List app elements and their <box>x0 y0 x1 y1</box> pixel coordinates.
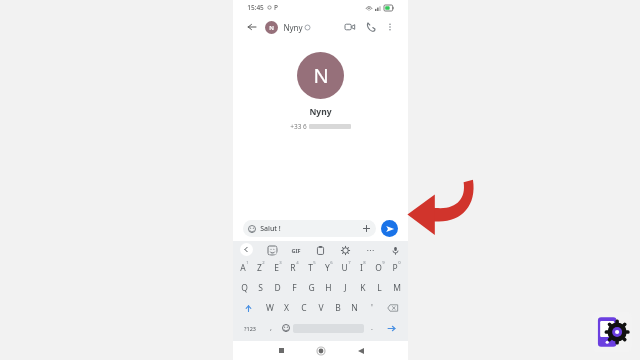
button[interactable]: F <box>286 278 303 298</box>
button[interactable]: Home <box>311 341 331 360</box>
button[interactable]: Stickers <box>266 244 278 256</box>
button[interactable]: GIF <box>291 244 301 256</box>
staticText: 2 <box>262 260 265 266</box>
staticText: ' <box>371 302 373 314</box>
staticText: 0 <box>398 260 401 266</box>
button[interactable]: Back <box>351 341 371 360</box>
staticText: GIF <box>291 247 301 254</box>
button[interactable]: Call <box>363 19 379 35</box>
button[interactable]: Backspace <box>380 298 405 318</box>
button[interactable]: Y <box>320 258 337 278</box>
staticText: E <box>274 262 279 274</box>
button[interactable]: , <box>263 318 278 338</box>
staticText: Salut ! <box>260 224 281 234</box>
staticText: K <box>360 282 366 294</box>
button[interactable]: Back <box>244 19 260 35</box>
button[interactable]: Back <box>240 243 253 256</box>
staticText: 9 <box>382 260 385 266</box>
button[interactable]: D <box>269 278 286 298</box>
button[interactable]: O <box>371 258 388 278</box>
button[interactable]: Recents <box>271 341 291 360</box>
button[interactable]: Voice input <box>389 244 401 256</box>
button[interactable]: W <box>261 298 278 318</box>
staticText: 1 <box>246 260 249 266</box>
button[interactable]: H <box>320 278 337 298</box>
staticText: 15:45 <box>247 3 264 12</box>
staticText: V <box>318 302 324 314</box>
button[interactable]: Settings <box>339 244 351 256</box>
staticText: Q <box>241 282 248 294</box>
button[interactable]: Send <box>381 220 398 237</box>
button[interactable]: Salut ! <box>243 220 376 237</box>
button[interactable]: More options <box>383 20 397 34</box>
staticText: M <box>393 282 401 294</box>
button[interactable]: J <box>337 278 354 298</box>
button[interactable]: T <box>303 258 320 278</box>
staticText: X <box>284 302 289 314</box>
button[interactable]: R <box>286 258 303 278</box>
button[interactable]: . <box>364 318 379 338</box>
staticText: J <box>344 282 347 294</box>
staticText: Z <box>257 262 262 274</box>
staticText: N <box>351 302 358 314</box>
staticText: T <box>308 262 313 274</box>
staticText: G <box>308 282 315 294</box>
staticText: ?123 <box>244 325 256 332</box>
staticText: 3 <box>279 260 282 266</box>
button[interactable]: S <box>252 278 269 298</box>
staticText: 7 <box>348 260 351 266</box>
staticText: P <box>274 3 278 12</box>
button[interactable]: I <box>354 258 371 278</box>
button[interactable]: Clipboard <box>314 244 326 256</box>
button[interactable]: Emoji <box>278 318 293 338</box>
staticText: B <box>335 302 341 314</box>
button[interactable]: G <box>303 278 320 298</box>
staticText: R <box>290 262 296 274</box>
button[interactable]: More <box>364 244 376 256</box>
button[interactable]: A <box>236 258 252 278</box>
staticText: N <box>269 24 274 32</box>
button[interactable]: ?123 <box>237 318 263 338</box>
button[interactable]: C <box>295 298 312 318</box>
button[interactable]: U <box>337 258 354 278</box>
staticText: S <box>258 282 263 294</box>
staticText: 4 <box>296 260 299 266</box>
staticText: N <box>313 62 329 89</box>
staticText: I <box>360 262 363 274</box>
staticText: +33 6 <box>290 122 307 131</box>
staticText: O <box>375 262 382 274</box>
staticText: 5 <box>313 260 316 266</box>
button[interactable]: E <box>269 258 286 278</box>
staticText: Y <box>325 262 330 274</box>
button[interactable]: Video call <box>342 19 358 35</box>
staticText: 8 <box>363 260 366 266</box>
staticText: . <box>371 323 373 333</box>
staticText: D <box>274 282 281 294</box>
staticText: Nyny <box>309 106 332 118</box>
staticText: A <box>240 262 246 274</box>
button[interactable]: Z <box>252 258 269 278</box>
button[interactable]: P <box>388 258 405 278</box>
button[interactable]: ' <box>363 298 380 318</box>
button[interactable]: N <box>297 52 344 99</box>
button[interactable]: Enter <box>379 318 404 338</box>
button[interactable]: K <box>354 278 371 298</box>
staticText: C <box>301 302 307 314</box>
staticText: L <box>377 282 382 294</box>
staticText: U <box>341 262 348 274</box>
button[interactable]: Shift <box>236 298 261 318</box>
button[interactable]: N <box>346 298 363 318</box>
staticText: F <box>292 282 297 294</box>
button[interactable]: B <box>329 298 346 318</box>
staticText: W <box>266 302 274 314</box>
staticText: 6 <box>330 260 333 266</box>
staticText: Nyny <box>283 22 303 33</box>
button[interactable]: M <box>388 278 405 298</box>
button[interactable]: X <box>278 298 295 318</box>
staticText: H <box>325 282 332 294</box>
button[interactable]: L <box>371 278 388 298</box>
button[interactable]: Q <box>236 278 252 298</box>
button[interactable]: V <box>312 298 329 318</box>
staticText: , <box>270 323 272 333</box>
